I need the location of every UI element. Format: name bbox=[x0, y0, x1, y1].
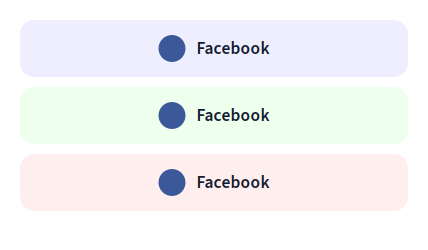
staticText: Facebook bbox=[196, 36, 269, 61]
staticText: Facebook bbox=[196, 103, 269, 128]
staticText: Facebook bbox=[196, 170, 269, 195]
